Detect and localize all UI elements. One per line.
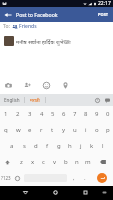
button[interactable]: ?123 bbox=[0, 170, 12, 186]
button[interactable]: 2 bbox=[12, 106, 24, 122]
button[interactable]: Recent apps bbox=[79, 186, 91, 198]
button[interactable]: e bbox=[24, 122, 36, 138]
button[interactable]: z bbox=[15, 154, 27, 170]
button[interactable]: 9 bbox=[91, 106, 102, 122]
button[interactable]: n bbox=[71, 154, 82, 170]
button[interactable]: t bbox=[47, 122, 58, 138]
staticText: b bbox=[64, 158, 68, 166]
button[interactable]: , bbox=[68, 170, 79, 186]
staticText: 4 bbox=[40, 110, 44, 118]
button[interactable]: 4 bbox=[36, 106, 47, 122]
staticText: English bbox=[4, 97, 20, 103]
button[interactable]: Clipboard bbox=[102, 95, 112, 105]
staticText: l bbox=[102, 142, 104, 150]
staticText: a bbox=[10, 142, 14, 150]
button[interactable]: f bbox=[42, 138, 53, 154]
button[interactable]: 0 bbox=[102, 106, 113, 122]
staticText: 7 bbox=[73, 110, 77, 118]
staticText: o bbox=[95, 126, 99, 134]
staticText: e bbox=[28, 126, 32, 134]
button[interactable]: POST bbox=[94, 7, 113, 22]
staticText: Friends bbox=[19, 23, 37, 30]
button[interactable]: 5 bbox=[47, 106, 58, 122]
button[interactable]: p bbox=[102, 122, 113, 138]
button[interactable]: Emoji bbox=[12, 170, 23, 186]
button[interactable]: l bbox=[97, 138, 108, 154]
button[interactable]: Shift bbox=[0, 154, 15, 170]
button[interactable]: 1 bbox=[0, 106, 12, 122]
button[interactable]: Back bbox=[19, 186, 31, 198]
staticText: g bbox=[57, 142, 61, 150]
staticText: i bbox=[85, 126, 87, 134]
button[interactable]: Home bbox=[49, 186, 61, 198]
staticText: 1 bbox=[4, 110, 8, 118]
button[interactable]: i bbox=[80, 122, 91, 138]
button[interactable]: s bbox=[18, 138, 30, 154]
button[interactable]: 8 bbox=[80, 106, 91, 122]
button[interactable]: Feeling activity bbox=[41, 80, 51, 90]
button[interactable]: k bbox=[86, 138, 97, 154]
staticText: s bbox=[23, 142, 26, 150]
button[interactable]: Back bbox=[0, 7, 16, 22]
staticText: h bbox=[68, 142, 72, 150]
staticText: मनीष सर्वांना हार्दिक शुभेच्छा bbox=[16, 38, 71, 45]
button[interactable]: English bbox=[0, 94, 24, 106]
staticText: m bbox=[85, 158, 91, 166]
button[interactable]: . bbox=[79, 170, 90, 186]
staticText: 3 bbox=[28, 110, 32, 118]
button[interactable]: मराठी bbox=[25, 94, 45, 106]
button[interactable]: Send bbox=[90, 170, 113, 186]
button[interactable]: a bbox=[6, 138, 18, 154]
button[interactable]: g bbox=[53, 138, 64, 154]
staticText: p bbox=[106, 126, 110, 134]
button[interactable]: w bbox=[12, 122, 24, 138]
staticText: . bbox=[84, 174, 86, 182]
staticText: 2 bbox=[16, 110, 20, 118]
staticText: c bbox=[42, 158, 45, 166]
button[interactable]: o bbox=[91, 122, 102, 138]
button[interactable]: 7 bbox=[69, 106, 80, 122]
button[interactable]: Backspace bbox=[93, 154, 113, 170]
button[interactable]: m bbox=[82, 154, 93, 170]
button[interactable]: Switch keyboard bbox=[98, 186, 110, 198]
button[interactable]: y bbox=[58, 122, 69, 138]
staticText: 8 bbox=[84, 110, 88, 118]
button[interactable]: c bbox=[38, 154, 49, 170]
staticText: u bbox=[73, 126, 77, 134]
staticText: x bbox=[31, 158, 35, 166]
staticText: j bbox=[80, 142, 82, 150]
button[interactable]: u bbox=[69, 122, 80, 138]
button[interactable]: Photo bbox=[3, 80, 13, 90]
button[interactable]: r bbox=[36, 122, 47, 138]
staticText: w bbox=[16, 126, 21, 134]
staticText: 6 bbox=[62, 110, 66, 118]
button[interactable]: q bbox=[0, 122, 12, 138]
button[interactable]: j bbox=[75, 138, 86, 154]
button[interactable]: b bbox=[60, 154, 71, 170]
staticText: मराठी bbox=[30, 97, 40, 103]
staticText: z bbox=[20, 158, 23, 166]
staticText: d bbox=[34, 142, 38, 150]
staticText: y bbox=[62, 126, 66, 134]
button[interactable]: Tag people bbox=[22, 80, 32, 90]
button[interactable]: 6 bbox=[58, 106, 69, 122]
button[interactable]: 3 bbox=[24, 106, 36, 122]
staticText: To: bbox=[3, 23, 10, 30]
staticText: 22:17 bbox=[98, 0, 111, 7]
staticText: r bbox=[40, 126, 43, 134]
button[interactable]: v bbox=[49, 154, 60, 170]
button[interactable]: h bbox=[64, 138, 75, 154]
button[interactable]: To: bbox=[0, 22, 113, 31]
staticText: 5 bbox=[51, 110, 55, 118]
button[interactable]: Check in bbox=[60, 80, 70, 90]
staticText: v bbox=[53, 158, 57, 166]
button[interactable]: x bbox=[27, 154, 38, 170]
button[interactable]: d bbox=[30, 138, 42, 154]
staticText: POST bbox=[98, 12, 109, 17]
staticText: t bbox=[51, 126, 54, 134]
staticText: 0 bbox=[106, 110, 110, 118]
staticText: q bbox=[4, 126, 8, 134]
staticText: 9 bbox=[95, 110, 99, 118]
button[interactable]: Settings bbox=[92, 95, 102, 105]
